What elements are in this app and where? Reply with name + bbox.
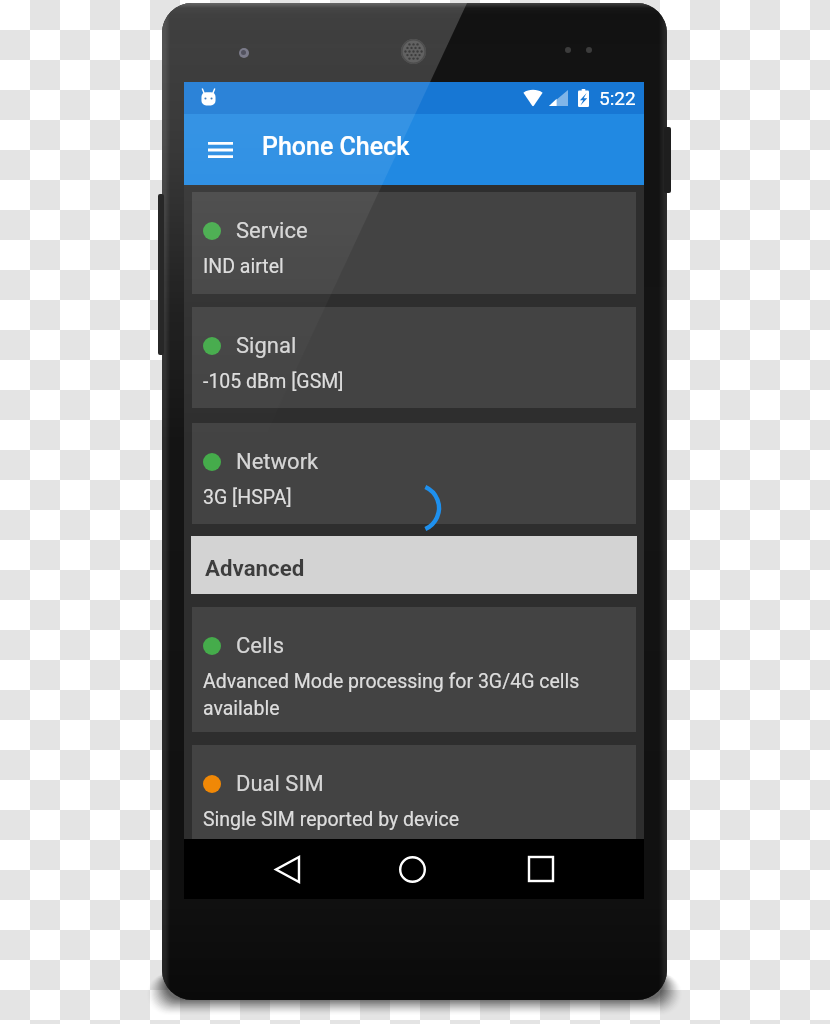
staticText: 3G [HSPA]	[203, 486, 292, 509]
button[interactable]: Service	[192, 192, 636, 294]
staticText: Advanced Mode processing for 3G/4G cells…	[203, 670, 580, 719]
button[interactable]: Cells	[192, 607, 636, 732]
staticText: Dual SIM	[236, 771, 324, 797]
staticText: Phone Check	[262, 132, 410, 161]
button[interactable]: Recent apps	[519, 847, 563, 891]
staticText: Single SIM reported by device	[203, 808, 460, 831]
staticText: Service	[236, 218, 308, 244]
staticText: Cells	[236, 633, 285, 659]
staticText: -105 dBm [GSM]	[203, 370, 344, 393]
button[interactable]: Signal	[192, 307, 636, 408]
button[interactable]: Open navigation menu	[198, 128, 242, 172]
button[interactable]: Back	[265, 847, 309, 891]
button[interactable]: Network	[192, 423, 636, 524]
staticText: Signal	[236, 333, 297, 359]
staticText: 5:22	[599, 87, 636, 109]
staticText: Network	[236, 449, 319, 475]
button[interactable]: Advanced	[191, 536, 637, 594]
button[interactable]: Dual SIM	[192, 745, 636, 839]
button[interactable]: Home	[390, 847, 434, 891]
staticText: Advanced	[205, 555, 305, 581]
staticText: IND airtel	[203, 255, 284, 278]
